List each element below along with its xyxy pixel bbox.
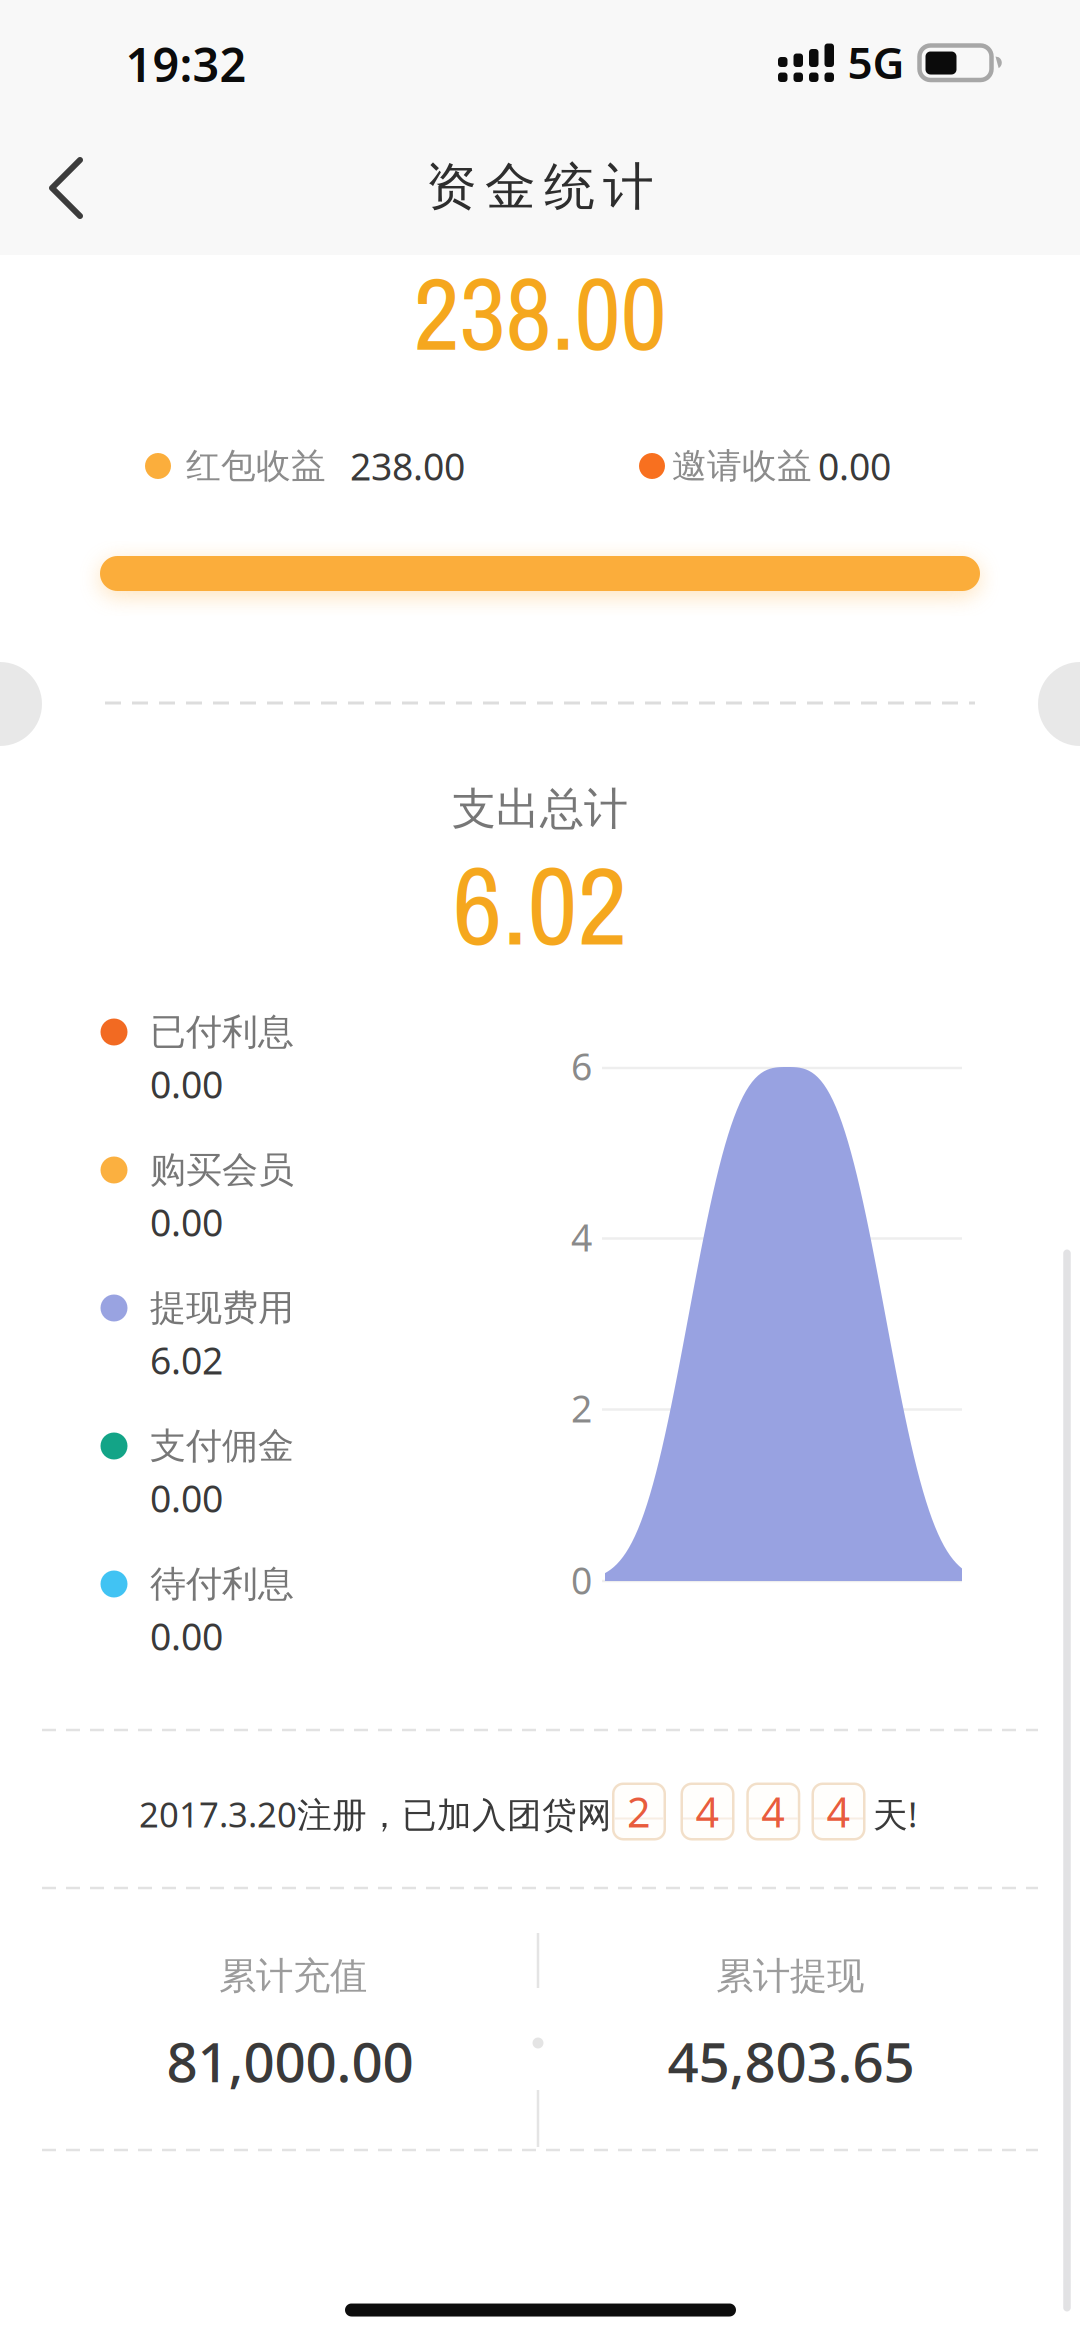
staticText: 238.00 [350, 441, 465, 491]
staticText: 0.00 [150, 1059, 223, 1109]
staticText: 累计充值 [219, 1953, 367, 1999]
staticText: 6.02 [150, 1335, 223, 1385]
staticText: 19:32 [125, 33, 246, 95]
staticText: 累计提现 [716, 1953, 864, 1999]
staticText: 4 [571, 1212, 592, 1262]
staticText: 资金统计 [426, 156, 654, 218]
staticText: 2 [571, 1383, 592, 1433]
staticText: 邀请收益 [672, 445, 812, 487]
staticText: 0.00 [818, 441, 891, 491]
staticText: 5G [847, 33, 904, 91]
staticText: 6 [571, 1041, 592, 1091]
staticText: 45,803.65 [667, 2025, 914, 2097]
staticText: 0.00 [150, 1611, 223, 1661]
staticText: 4 [826, 1784, 850, 1839]
staticText: 天! [873, 1791, 917, 1837]
staticText: 支付佣金 [150, 1424, 294, 1468]
staticText: 0 [571, 1555, 592, 1605]
button[interactable]: Back [40, 150, 92, 226]
staticText: 0.00 [150, 1473, 223, 1523]
staticText: 待付利息 [150, 1562, 294, 1606]
staticText: 提现费用 [150, 1286, 294, 1330]
staticText: 2017.3.20注册，已加入团贷网 [139, 1791, 612, 1837]
staticText: 红包收益 [186, 445, 326, 487]
staticText: 6.02 [452, 831, 627, 979]
staticText: 购买会员 [150, 1148, 294, 1192]
staticText: 81,000.00 [166, 2025, 413, 2097]
staticText: 2 [627, 1784, 651, 1839]
staticText: 238.00 [413, 245, 666, 381]
staticText: 4 [695, 1784, 719, 1839]
staticText: 支出总计 [452, 782, 628, 836]
staticText: 已付利息 [150, 1010, 294, 1054]
staticText: 0.00 [150, 1197, 223, 1247]
staticText: 4 [761, 1784, 785, 1839]
